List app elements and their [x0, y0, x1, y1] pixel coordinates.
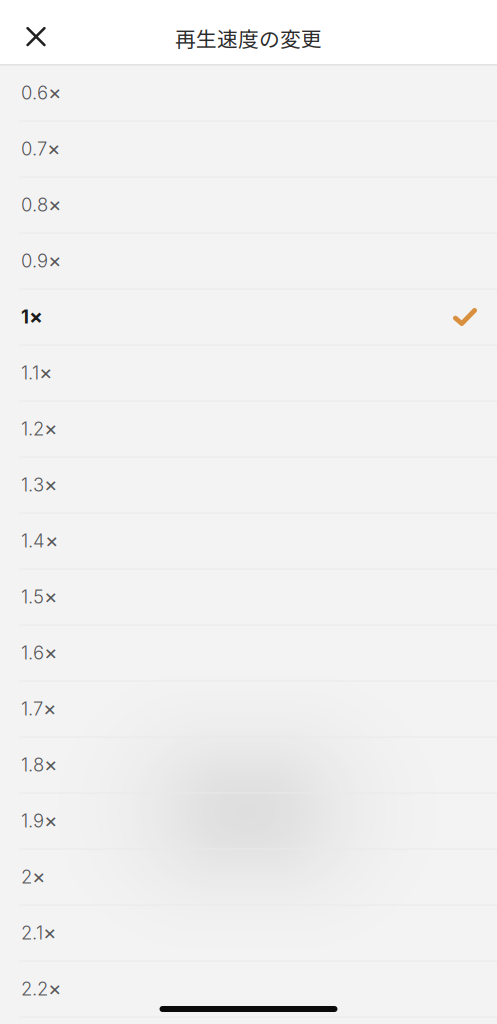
staticText: 1.2×: [21, 416, 58, 440]
button[interactable]: 1.7×: [0, 681, 497, 737]
button[interactable]: 1.5×: [0, 569, 497, 625]
staticText: 1.6×: [21, 640, 58, 664]
staticText: 1.3×: [21, 472, 58, 496]
staticText: 1.1×: [21, 360, 53, 384]
button[interactable]: Close: [14, 16, 58, 60]
button[interactable]: 1.4×: [0, 513, 497, 569]
staticText: 0.7×: [21, 136, 61, 160]
staticText: 再生速度の変更: [175, 23, 322, 53]
button[interactable]: 1×: [0, 289, 497, 345]
staticText: 1.9×: [21, 808, 58, 832]
button[interactable]: 1.9×: [0, 793, 497, 849]
button[interactable]: 1.6×: [0, 625, 497, 681]
button[interactable]: 2.2×: [0, 961, 497, 1017]
button[interactable]: 0.8×: [0, 177, 497, 233]
button[interactable]: 0.9×: [0, 233, 497, 289]
staticText: 0.6×: [21, 80, 62, 104]
staticText: 0.9×: [21, 248, 62, 272]
button[interactable]: 1.1×: [0, 345, 497, 401]
staticText: 2×: [21, 864, 46, 888]
staticText: 1×: [21, 304, 43, 328]
staticText: 2.1×: [21, 920, 57, 944]
button[interactable]: 1.3×: [0, 457, 497, 513]
staticText: 1.7×: [21, 696, 57, 720]
button[interactable]: 1.8×: [0, 737, 497, 793]
staticText: 2.2×: [21, 976, 62, 1000]
button[interactable]: 2.1×: [0, 905, 497, 961]
staticText: 1.8×: [21, 752, 58, 776]
button[interactable]: 0.7×: [0, 121, 497, 177]
button[interactable]: 1.2×: [0, 401, 497, 457]
staticText: 0.8×: [21, 192, 62, 216]
staticText: 1.5×: [21, 584, 58, 608]
button[interactable]: 2×: [0, 849, 497, 905]
staticText: 1.4×: [21, 528, 59, 552]
button[interactable]: 0.6×: [0, 65, 497, 121]
